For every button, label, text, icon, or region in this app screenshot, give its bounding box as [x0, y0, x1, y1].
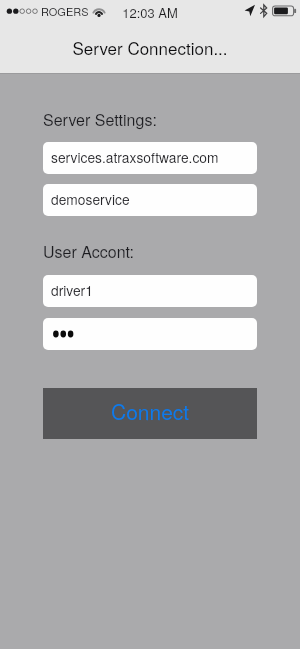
staticText: Server Settings:: [43, 108, 157, 131]
staticText: Server Connection...: [72, 35, 228, 59]
staticText: 12:03 AM: [122, 3, 178, 22]
other: Wi-Fi: [92, 3, 106, 17]
button[interactable]: driver1: [43, 275, 257, 307]
staticText: demoservice: [51, 189, 130, 209]
button[interactable]: Password: [43, 318, 257, 350]
staticText: services.atraxsoftware.com: [51, 147, 219, 167]
staticText: ROGERS: [41, 3, 89, 19]
staticText: User Accont:: [43, 240, 134, 263]
button[interactable]: Server Connection: [0, 35, 300, 61]
button[interactable]: demoservice: [43, 184, 257, 216]
staticText: driver1: [51, 280, 93, 300]
button[interactable]: Connect: [43, 388, 257, 439]
button[interactable]: services.atraxsoftware.com: [43, 142, 257, 174]
staticText: Connect: [111, 396, 190, 426]
